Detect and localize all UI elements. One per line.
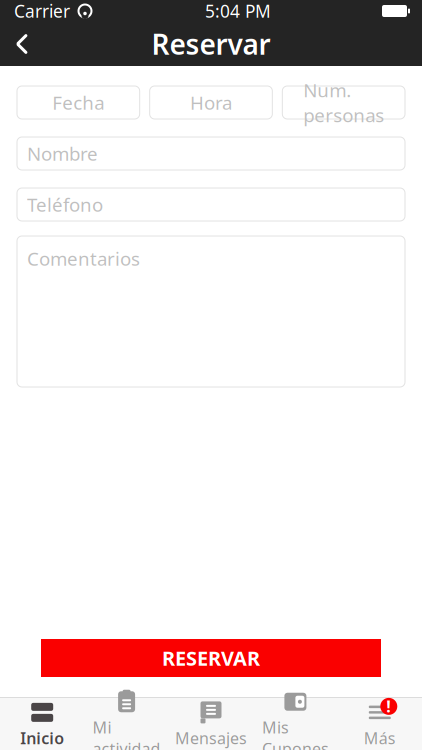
button[interactable]: Hora <box>150 86 272 119</box>
staticText: Inicio <box>20 727 64 749</box>
staticText: Hora <box>190 90 232 115</box>
button[interactable]: Mi actividad <box>84 683 169 750</box>
staticText: ! <box>386 696 391 717</box>
staticText: Comentarios <box>27 246 140 271</box>
staticText: Más <box>364 727 396 749</box>
button[interactable]: Fecha <box>17 86 140 119</box>
button[interactable]: Num. personas <box>282 86 405 119</box>
button[interactable]: Teléfono <box>17 188 405 221</box>
staticText: Mi actividad <box>93 717 161 750</box>
staticText: Nombre <box>27 141 98 166</box>
staticText: RESERVAR <box>162 645 260 671</box>
button[interactable]: RESERVAR <box>41 639 381 677</box>
button[interactable]: Comentarios <box>17 236 405 387</box>
button[interactable]: Back <box>0 22 44 66</box>
staticText: Teléfono <box>27 192 103 217</box>
staticText: Mensajes <box>175 727 247 749</box>
staticText: Carrier <box>14 0 70 22</box>
button[interactable]: Nombre <box>17 137 405 170</box>
staticText: Num. personas <box>303 78 384 127</box>
button[interactable]: Inicio <box>0 693 84 750</box>
button[interactable]: ! <box>338 693 422 750</box>
button[interactable]: Mensajes <box>169 693 253 750</box>
staticText: Mis Cupones <box>262 717 329 750</box>
staticText: Fecha <box>52 90 104 115</box>
button[interactable]: Mis Cupones <box>253 683 338 750</box>
staticText: 5:04 PM <box>205 0 271 22</box>
staticText: Reservar <box>151 25 270 63</box>
